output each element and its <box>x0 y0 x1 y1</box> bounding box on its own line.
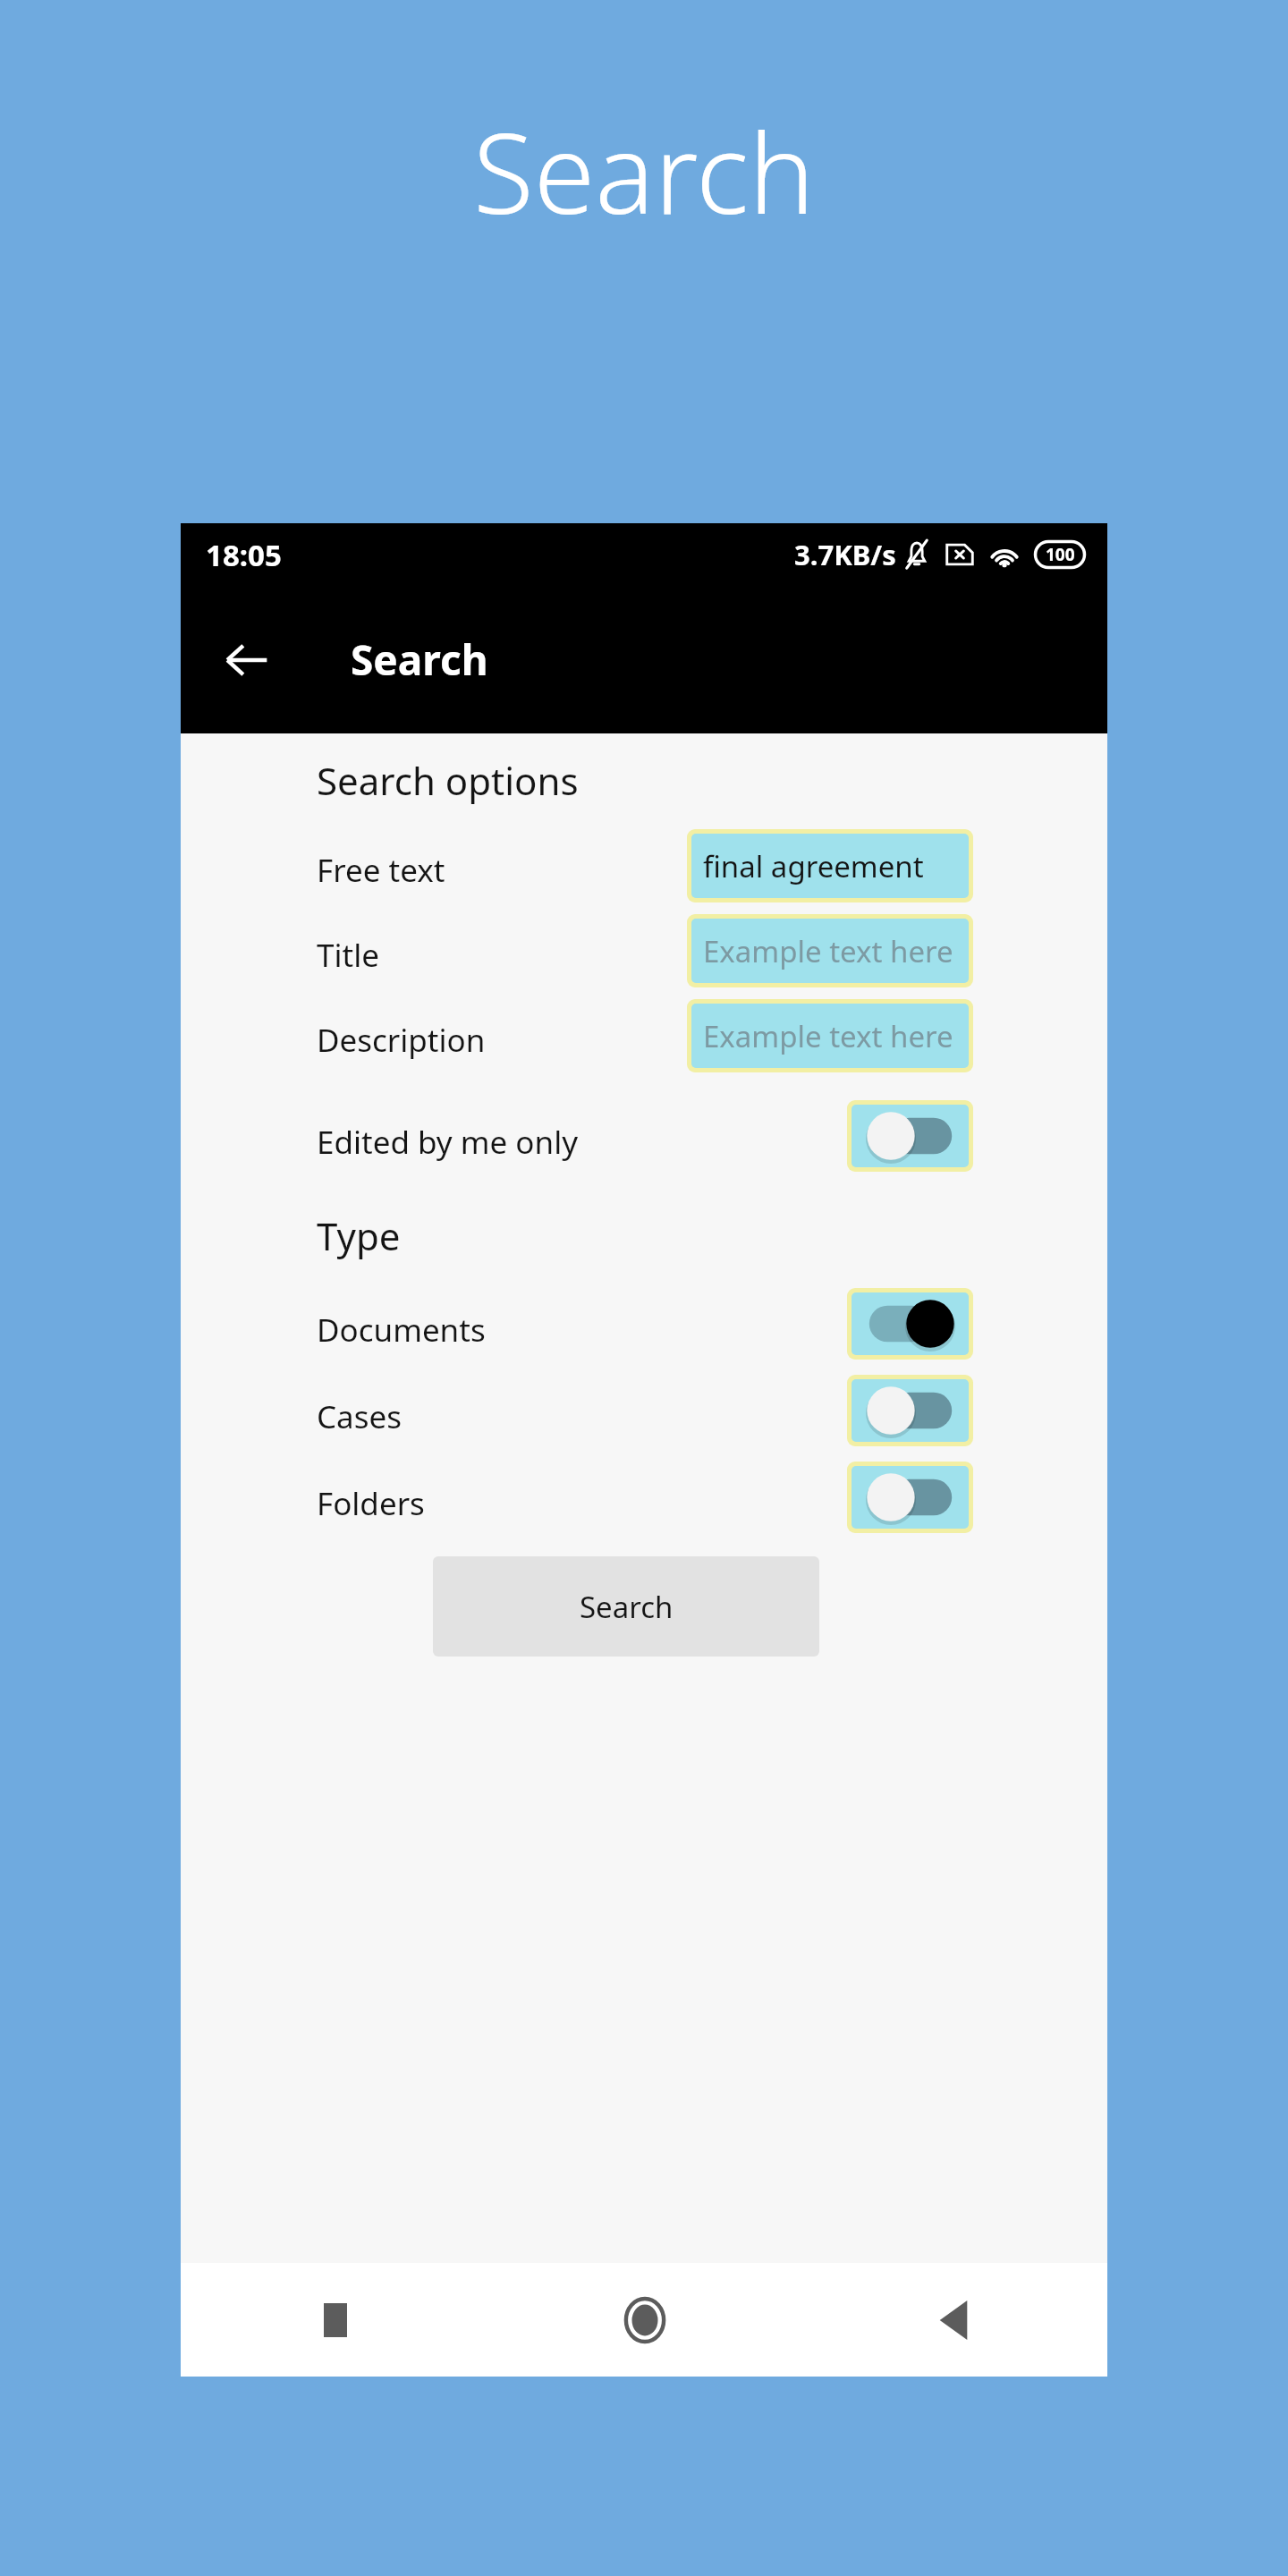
button[interactable]: Home <box>490 2263 799 2377</box>
button[interactable]: Cases <box>852 1379 969 1442</box>
button[interactable]: Back <box>799 2263 1107 2377</box>
staticText: 18:05 <box>206 535 282 575</box>
staticText: Cases <box>317 1395 402 1438</box>
staticText: Search options <box>317 755 579 806</box>
button[interactable]: Recents <box>181 2263 490 2377</box>
button[interactable]: Search <box>433 1556 819 1657</box>
staticText: 3.7KB/s <box>794 536 896 573</box>
staticText: Title <box>317 934 379 977</box>
staticText: Documents <box>317 1309 486 1352</box>
button[interactable]: Edited by me only <box>852 1105 969 1167</box>
button[interactable]: Back <box>206 619 288 701</box>
staticText: Type <box>317 1210 401 1261</box>
staticText: final agreement <box>703 846 924 886</box>
staticText: Folders <box>317 1482 425 1525</box>
staticText: Search <box>580 1587 674 1627</box>
staticText: Search <box>0 95 1288 246</box>
staticText: 100 <box>1046 543 1075 566</box>
staticText: Free text <box>317 849 445 892</box>
staticText: Example text here <box>703 931 953 971</box>
staticText: Description <box>317 1019 486 1062</box>
staticText: Edited by me only <box>317 1121 579 1164</box>
button[interactable]: final agreement <box>691 834 969 898</box>
button[interactable]: Example text here <box>691 1004 969 1068</box>
button[interactable]: Folders <box>852 1466 969 1529</box>
staticText: Example text here <box>703 1016 953 1056</box>
button[interactable]: Documents <box>852 1292 969 1355</box>
button[interactable]: Example text here <box>691 919 969 983</box>
staticText: Search <box>351 631 488 688</box>
